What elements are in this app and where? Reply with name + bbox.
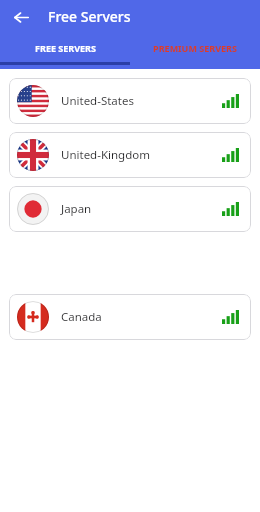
staticText: Canada — [61, 309, 102, 325]
button[interactable]: Canada — [9, 294, 251, 340]
staticText: PREMIUM SERVERS — [153, 42, 237, 54]
staticText: Free Servers — [48, 7, 131, 26]
button[interactable]: Back — [8, 4, 34, 30]
button[interactable]: FREE SERVERS — [0, 33, 130, 62]
button[interactable]: Japan — [9, 186, 251, 232]
staticText: United-States — [61, 93, 134, 109]
staticText: Japan — [61, 201, 92, 217]
button[interactable]: PREMIUM SERVERS — [130, 33, 260, 62]
button[interactable]: United-States — [9, 78, 251, 124]
staticText: United-Kingdom — [61, 147, 150, 163]
button[interactable]: United-Kingdom — [9, 132, 251, 178]
staticText: FREE SERVERS — [35, 42, 96, 54]
